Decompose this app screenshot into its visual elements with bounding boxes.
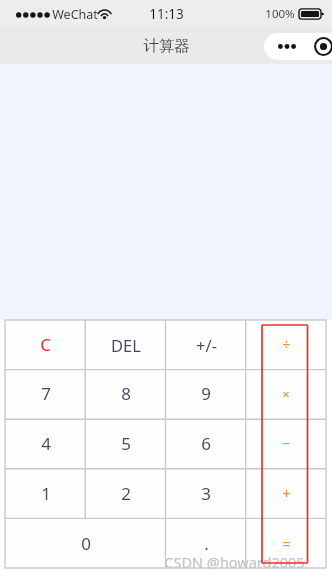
staticText: −	[282, 434, 290, 452]
staticText: 计算器	[143, 36, 190, 56]
button[interactable]: −	[246, 418, 326, 468]
button[interactable]: =	[246, 518, 326, 568]
staticText: +/-	[196, 334, 217, 356]
button[interactable]: 3	[166, 468, 246, 518]
button[interactable]: .	[166, 518, 246, 568]
staticText: 7	[41, 382, 51, 405]
button[interactable]: 7	[5, 369, 86, 418]
staticText: 8	[121, 382, 131, 405]
button[interactable]: ×	[246, 369, 326, 418]
staticText: +	[282, 483, 291, 503]
button[interactable]: C	[5, 320, 86, 369]
staticText: ÷	[282, 335, 291, 354]
button[interactable]: DEL	[86, 320, 166, 369]
button[interactable]: 0	[5, 518, 166, 568]
staticText: 100%	[265, 6, 295, 22]
button[interactable]: +	[246, 468, 326, 518]
button[interactable]: Close	[309, 33, 332, 60]
staticText: 4	[41, 432, 51, 455]
staticText: 0	[81, 532, 91, 555]
staticText: WeChat	[52, 6, 98, 23]
button[interactable]: 1	[5, 468, 86, 518]
staticText: 11:13	[149, 5, 184, 23]
staticText: C	[40, 333, 51, 356]
button[interactable]: 4	[5, 418, 86, 468]
staticText: 5	[121, 432, 131, 455]
staticText: CSDN @howard2005	[164, 552, 305, 572]
staticText: ×	[282, 385, 290, 403]
staticText: 6	[201, 432, 211, 455]
staticText: 3	[201, 482, 211, 505]
button[interactable]: More	[273, 33, 301, 60]
staticText: =	[282, 534, 291, 553]
button[interactable]: +/-	[166, 320, 246, 369]
staticText: 1	[41, 482, 51, 505]
button[interactable]: 9	[166, 369, 246, 418]
button[interactable]: 8	[86, 369, 166, 418]
staticText: 9	[201, 382, 211, 405]
button[interactable]: ÷	[246, 320, 326, 369]
staticText: 2	[121, 482, 131, 505]
staticText: .	[204, 532, 209, 555]
button[interactable]: 5	[86, 418, 166, 468]
button[interactable]: 6	[166, 418, 246, 468]
staticText: DEL	[111, 334, 141, 356]
button[interactable]: 2	[86, 468, 166, 518]
